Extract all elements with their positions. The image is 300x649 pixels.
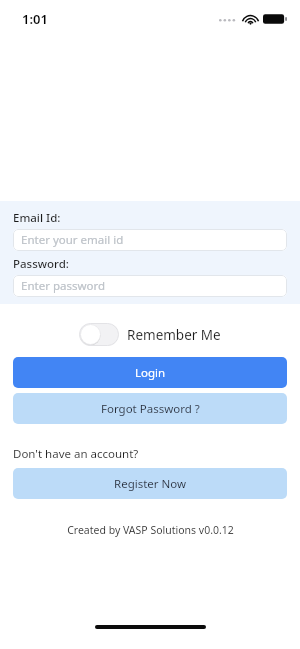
staticText: 1:01 (22, 10, 48, 28)
button[interactable]: Remember Me toggle (79, 323, 119, 346)
button[interactable]: Forgot Password ? (13, 393, 287, 424)
staticText: Login (135, 365, 166, 381)
staticText: Don't have an account? (13, 446, 139, 462)
button[interactable]: Enter password (13, 275, 287, 297)
staticText: Register Now (114, 476, 187, 492)
staticText: Remember Me (127, 326, 221, 344)
staticText: Enter your email id (21, 232, 124, 248)
staticText: Enter password (21, 278, 106, 294)
button[interactable]: Remember Me toggle (77, 321, 223, 348)
staticText: Email Id: (13, 210, 61, 226)
staticText: Forgot Password ? (101, 401, 200, 417)
button[interactable]: Register Now (13, 468, 287, 499)
button[interactable]: Enter your email id (13, 229, 287, 251)
staticText: Password: (13, 256, 69, 272)
button[interactable]: Login (13, 357, 287, 388)
staticText: Created by VASP Solutions v0.0.12 (67, 523, 234, 537)
